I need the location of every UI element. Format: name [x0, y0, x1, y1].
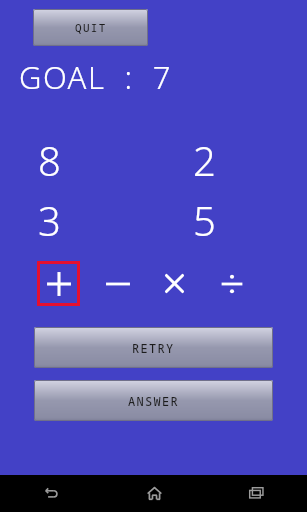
- button[interactable]: Plus operator, selected: [37, 261, 80, 306]
- staticText: 3: [38, 193, 61, 247]
- button[interactable]: Recent apps: [205, 475, 307, 512]
- button[interactable]: Back: [0, 475, 103, 512]
- staticText: 5: [193, 193, 216, 247]
- button[interactable]: ANSWER: [34, 380, 273, 421]
- button[interactable]: Minus operator: [96, 261, 139, 306]
- button[interactable]: QUIT: [33, 9, 148, 46]
- staticText: 2: [193, 133, 216, 187]
- staticText: 8: [38, 133, 61, 187]
- button[interactable]: Divide operator: [210, 261, 253, 306]
- staticText: QUIT: [75, 20, 107, 35]
- button[interactable]: Home: [103, 475, 205, 512]
- staticText: RETRY: [132, 340, 175, 356]
- button[interactable]: Multiply operator: [153, 261, 196, 306]
- staticText: ANSWER: [128, 393, 180, 409]
- button[interactable]: RETRY: [34, 327, 273, 368]
- staticText: GOAL : 7: [19, 56, 172, 98]
